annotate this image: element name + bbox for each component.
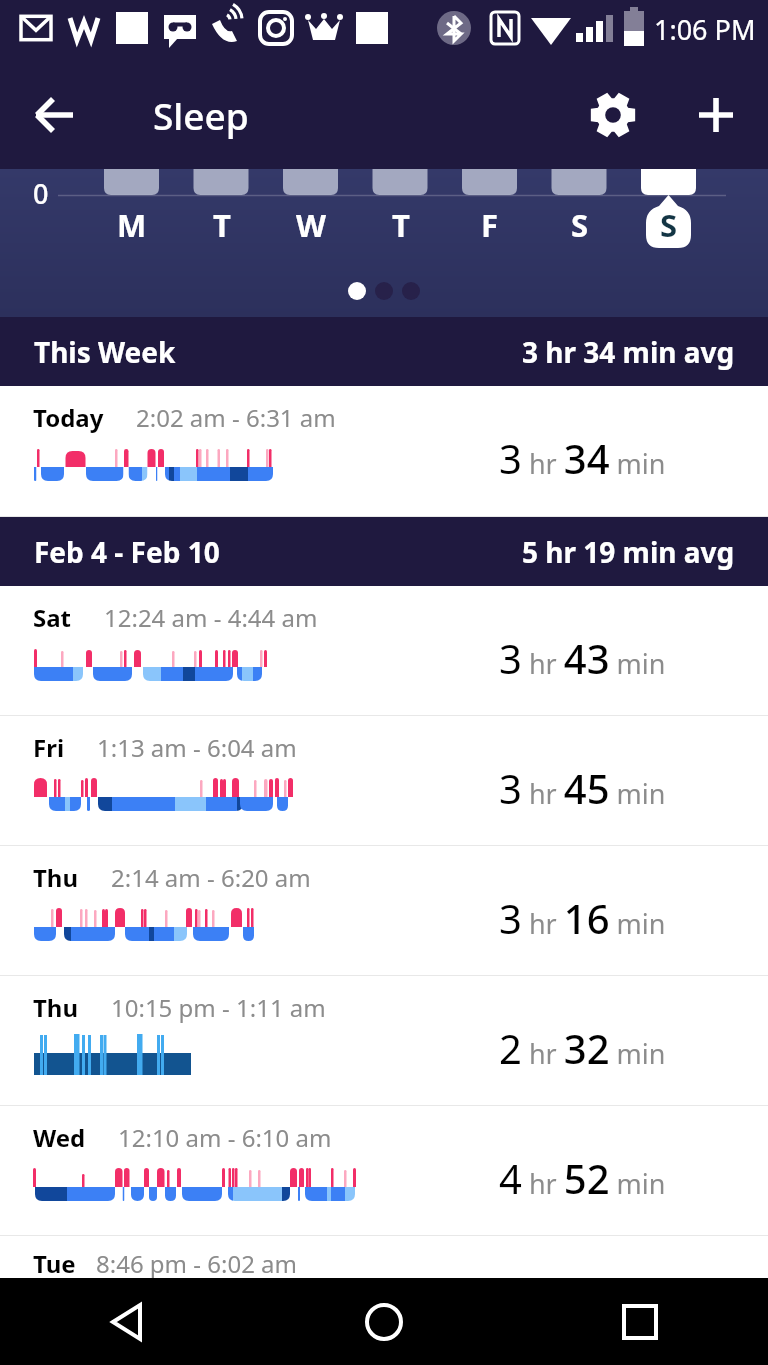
button[interactable]: Home xyxy=(336,1278,432,1365)
staticText: 2 hr 32 min xyxy=(499,1021,666,1075)
button[interactable]: This Week xyxy=(0,317,768,386)
staticText: 3 hr 34 min xyxy=(499,431,666,485)
button[interactable]: T xyxy=(373,203,428,247)
staticText: Today xyxy=(33,401,104,434)
button[interactable]: Sat xyxy=(0,586,768,716)
button[interactable]: Back xyxy=(0,60,110,169)
staticText: F xyxy=(481,204,499,246)
staticText: 3 hr 45 min xyxy=(499,761,666,815)
button[interactable]: Settings xyxy=(565,60,661,169)
button[interactable]: Thu xyxy=(0,976,768,1106)
button[interactable]: S xyxy=(552,203,607,247)
button[interactable]: Back xyxy=(80,1278,176,1365)
staticText: 3 hr 43 min xyxy=(499,631,666,685)
staticText: W xyxy=(296,204,326,246)
staticText: Sleep xyxy=(153,90,249,140)
button[interactable]: W xyxy=(283,203,338,247)
staticText: 4 hr 52 min xyxy=(499,1151,666,1205)
button[interactable]: Recents xyxy=(592,1278,688,1365)
staticText: 3 hr 16 min xyxy=(499,891,666,945)
staticText: Fri xyxy=(33,731,65,764)
button[interactable]: Feb 4 - Feb 10 xyxy=(0,517,768,586)
staticText: 5 hr 19 min avg xyxy=(522,533,735,571)
staticText: 1:06 PM xyxy=(654,11,756,48)
button[interactable]: Fri xyxy=(0,716,768,846)
staticText: Thu xyxy=(33,861,79,894)
staticText: 2:02 am - 6:31 am xyxy=(136,401,336,434)
staticText: 1:13 am - 6:04 am xyxy=(97,731,297,764)
staticText: Tue xyxy=(33,1247,76,1278)
staticText: Thu xyxy=(33,991,79,1024)
staticText: 0 xyxy=(33,175,49,212)
button[interactable]: F xyxy=(462,203,517,247)
staticText: T xyxy=(392,204,410,246)
staticText: S xyxy=(660,204,678,246)
staticText: Wed xyxy=(33,1121,86,1154)
staticText: M xyxy=(117,204,147,246)
button[interactable]: Add xyxy=(668,60,764,169)
staticText: 8:46 pm - 6:02 am xyxy=(96,1247,298,1278)
staticText: Sat xyxy=(33,601,72,634)
staticText: This Week xyxy=(34,333,176,371)
staticText: 12:10 am - 6:10 am xyxy=(118,1121,332,1154)
button[interactable]: T xyxy=(194,203,249,247)
staticText: S xyxy=(571,204,589,246)
staticText: 2:14 am - 6:20 am xyxy=(111,861,311,894)
staticText: Feb 4 - Feb 10 xyxy=(34,533,220,571)
button[interactable]: Wed xyxy=(0,1106,768,1236)
staticText: 3 hr 34 min avg xyxy=(522,333,735,371)
button[interactable]: Sunday xyxy=(646,202,691,248)
staticText: 10:15 pm - 1:11 am xyxy=(111,991,326,1024)
button[interactable]: M xyxy=(104,203,159,247)
button[interactable]: Thu xyxy=(0,846,768,976)
staticText: 12:24 am - 4:44 am xyxy=(104,601,318,634)
button[interactable]: Tue xyxy=(0,1236,768,1278)
staticText: T xyxy=(213,204,231,246)
button[interactable]: Today xyxy=(0,386,768,517)
